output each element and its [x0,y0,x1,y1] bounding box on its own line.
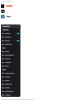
button[interactable]: Sidebar item [1,61,20,64]
button[interactable]: Sidebar item [1,53,20,57]
button[interactable]: Sidebar item [1,32,20,35]
button[interactable]: Sidebar item [1,79,20,82]
button[interactable]: Sidebar item [1,93,20,97]
button[interactable]: Open app one [1,3,25,9]
button[interactable]: Sidebar item [1,75,20,79]
button[interactable]: Sidebar item [1,71,20,75]
button[interactable]: Sidebar item [1,57,20,61]
button[interactable]: Sidebar item [1,50,20,53]
button[interactable]: Open app three [1,14,25,19]
button[interactable]: Open app two [1,9,25,14]
button[interactable]: Sidebar item [1,82,20,86]
button[interactable]: Sidebar item [1,64,20,68]
button[interactable]: Sidebar item [1,90,20,93]
button[interactable]: Sidebar item [1,39,20,43]
button[interactable]: Sidebar item [1,35,20,39]
button[interactable]: Sidebar item [1,43,20,46]
button[interactable]: Sidebar item [1,86,20,90]
